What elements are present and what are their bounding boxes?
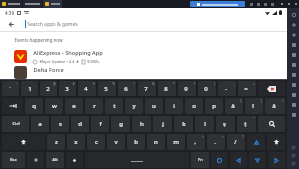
button[interactable]: Emulator tool 3 [289, 40, 298, 49]
button[interactable]: 3 [59, 81, 76, 96]
button[interactable]: ă [225, 98, 243, 114]
button[interactable]: Window control [292, 0, 299, 8]
button[interactable]: / [227, 134, 245, 150]
button[interactable]: AliExpress - Shopping App [0, 46, 287, 66]
button[interactable]: g [111, 116, 130, 132]
button[interactable]: = [238, 81, 256, 96]
button[interactable]: Emulator tool 2 [289, 30, 298, 39]
button[interactable]: Emulator tool 10 [289, 110, 298, 119]
staticText: # [72, 82, 75, 86]
button[interactable]: Delta Force [0, 66, 287, 79]
button[interactable]: Shift [267, 134, 285, 150]
button[interactable]: Panel control [289, 143, 297, 151]
button[interactable]: t [105, 98, 123, 114]
button[interactable]: Esc [2, 152, 25, 168]
button[interactable]: Emulator tool 5 [289, 60, 298, 69]
button[interactable]: . [207, 134, 225, 150]
staticText: v [114, 138, 118, 146]
button[interactable]: Window control [285, 0, 292, 8]
button[interactable]: ț [237, 116, 256, 132]
button[interactable]: e [65, 98, 83, 114]
button[interactable]: a [31, 116, 49, 132]
button[interactable]: Shift [2, 134, 45, 150]
button[interactable]: Window control [262, 0, 269, 8]
button[interactable]: - [218, 81, 236, 96]
button[interactable]: Browser tab [0, 0, 22, 8]
button[interactable]: c [87, 134, 105, 150]
button[interactable]: z [47, 134, 65, 150]
button[interactable]: 0 [198, 81, 216, 96]
button[interactable]: Window control [278, 0, 285, 8]
button[interactable]: Resume in Player [190, 1, 245, 7]
button[interactable]: Up [247, 134, 265, 150]
button[interactable]: Emulator tool 0 [289, 10, 298, 19]
button[interactable]: Panel control [289, 159, 297, 167]
button[interactable]: Window control [269, 0, 276, 8]
button[interactable]: 2 [40, 81, 57, 96]
button[interactable]: Alt [46, 152, 64, 168]
button[interactable]: 9 [178, 81, 196, 96]
button[interactable]: 4 [78, 81, 96, 96]
button[interactable]: Emulator tool 8 [289, 90, 298, 99]
button[interactable]: y [125, 98, 143, 114]
button[interactable]: Emulator tool 7 [289, 80, 298, 89]
button[interactable]: p [205, 98, 223, 114]
button[interactable]: i [165, 98, 183, 114]
button[interactable]: Emulator tool 6 [289, 70, 298, 79]
button[interactable]: Emulator tool 9 [289, 100, 298, 109]
button[interactable]: Backspace [258, 81, 285, 96]
button[interactable]: î [245, 98, 263, 114]
button[interactable]: 8 [158, 81, 176, 96]
staticText: Search apps & games [27, 21, 78, 28]
button[interactable]: Panel control [289, 151, 297, 159]
button[interactable]: Right [268, 152, 285, 168]
staticText: d [78, 120, 82, 128]
button[interactable]: Left [230, 152, 247, 168]
button[interactable]: Emulator tool 4 [289, 50, 298, 59]
button[interactable]: s [51, 116, 69, 132]
button[interactable]: â [265, 98, 285, 114]
button[interactable]: Home [211, 152, 228, 168]
button[interactable]: j [153, 116, 172, 132]
button[interactable]: Back [5, 18, 17, 30]
button[interactable]: Window control [255, 0, 262, 8]
button[interactable]: 6 [118, 81, 136, 96]
button[interactable]: u [145, 98, 163, 114]
button[interactable]: Browser tab [43, 0, 62, 8]
button[interactable]: h [132, 116, 151, 132]
button[interactable]: n [147, 134, 165, 150]
button[interactable]: 1 [21, 81, 38, 96]
button[interactable]: b [127, 134, 145, 150]
button[interactable]: , [187, 134, 205, 150]
button[interactable]: x [67, 134, 85, 150]
button[interactable]: o [185, 98, 203, 114]
button[interactable]: k [174, 116, 193, 132]
staticText: $ [93, 82, 95, 86]
button[interactable]: Ctrl [2, 116, 29, 132]
button[interactable]: Settings [27, 152, 44, 168]
button[interactable]: Down [249, 152, 266, 168]
button[interactable]: d [71, 116, 89, 132]
button[interactable]: Emulator tool 1 [289, 20, 298, 29]
button[interactable]: l [195, 116, 214, 132]
button[interactable]: Search [258, 116, 285, 132]
button[interactable]: r [85, 98, 103, 114]
button[interactable]: 7 [138, 81, 156, 96]
button[interactable]: m [167, 134, 185, 150]
button[interactable]: Browser tab [23, 0, 42, 8]
staticText: AliExpress - Shopping App [33, 49, 103, 57]
button[interactable]: Fn [191, 152, 209, 168]
button[interactable]: Tab [2, 98, 23, 114]
button[interactable]: w [45, 98, 63, 114]
button[interactable]: q [25, 98, 43, 114]
button[interactable]: f [91, 116, 109, 132]
button[interactable]: v [107, 134, 125, 150]
button[interactable]: Window control [248, 0, 255, 8]
button[interactable]: Space [85, 152, 189, 168]
button[interactable]: Search apps & games [25, 20, 287, 28]
button[interactable]: ș [216, 116, 235, 132]
button[interactable]: ` [2, 81, 19, 96]
staticText: g [119, 120, 123, 128]
button[interactable]: 5 [98, 81, 116, 96]
button[interactable]: Menu [66, 152, 83, 168]
